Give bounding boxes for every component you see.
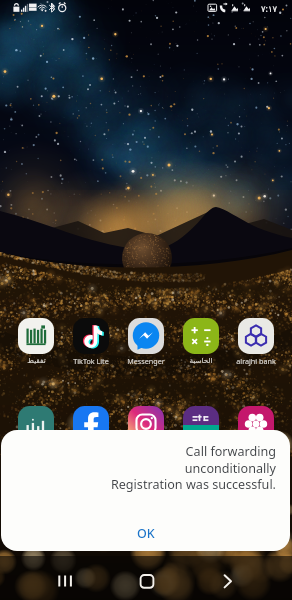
staticText: الحاسبة [189, 356, 213, 364]
button[interactable]: الحاسبة [174, 318, 228, 364]
button[interactable]: Home [127, 562, 167, 600]
staticText: ٧:١٧ [261, 3, 278, 15]
staticText: Call forwarding unconditionally Registra… [1, 443, 276, 492]
button[interactable]: TikTok Lite [64, 318, 118, 366]
staticText: stc pay [189, 444, 213, 454]
button[interactable]: Recent apps [44, 562, 84, 600]
staticText: alrajhi bank [236, 356, 276, 366]
button[interactable]: Back [208, 562, 248, 600]
button[interactable]: نفاذ [9, 406, 63, 452]
staticText: OK [137, 525, 155, 542]
button[interactable]: تفقيط [9, 318, 63, 364]
button[interactable]: OK [1, 515, 290, 551]
button[interactable]: Messenger [119, 318, 173, 366]
button[interactable] [229, 406, 283, 454]
staticText: TikTok Lite [73, 356, 109, 366]
staticText: تفقيط [27, 356, 46, 364]
button[interactable]: Facebook [64, 406, 118, 454]
button[interactable]: Instagram [119, 406, 173, 454]
staticText: Messenger [127, 356, 165, 366]
button[interactable]: alrajhi bank [229, 318, 283, 366]
button[interactable]: stc pay [174, 406, 228, 454]
